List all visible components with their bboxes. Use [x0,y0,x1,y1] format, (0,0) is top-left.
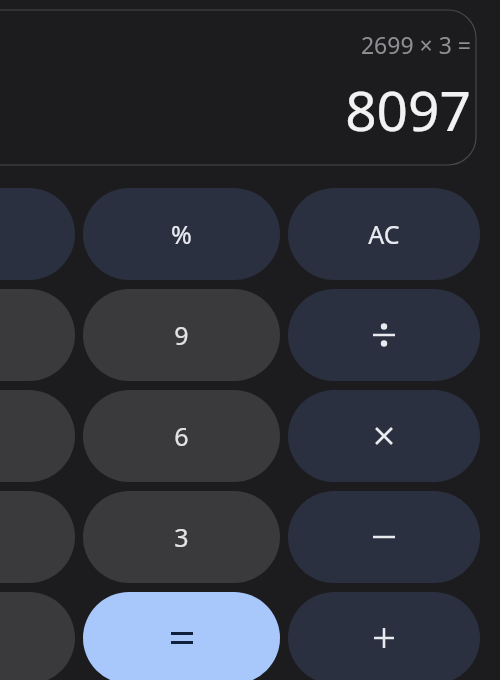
button[interactable]: 3 [83,491,280,583]
button[interactable]: Multiply [288,390,480,482]
staticText: % [171,217,192,251]
button[interactable]: 9 [83,289,280,381]
button[interactable] [0,289,75,381]
button[interactable] [0,491,75,583]
button[interactable]: Divide [288,289,480,381]
button[interactable]: Percent [83,188,280,280]
button[interactable] [0,188,75,280]
button[interactable]: Equals [83,592,280,680]
staticText: 3 [174,520,189,554]
button[interactable] [0,592,75,680]
button[interactable]: AC [288,188,480,280]
staticText: AC [368,217,400,251]
button[interactable] [0,390,75,482]
button[interactable]: Plus [288,592,480,680]
staticText: 6 [174,419,189,453]
staticText: 8097 [345,72,471,147]
button[interactable]: Minus [288,491,480,583]
button[interactable]: 6 [83,390,280,482]
staticText: 9 [174,318,189,352]
staticText: 2699 × 3 = [360,29,471,60]
